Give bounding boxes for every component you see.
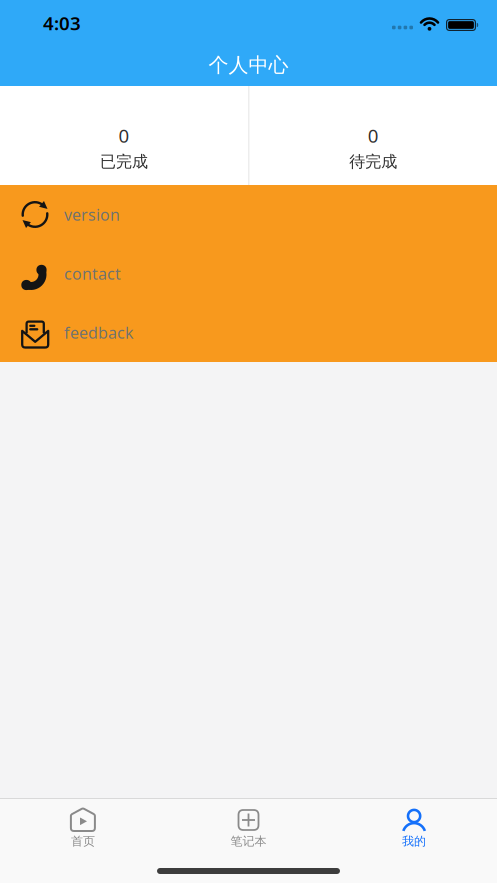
button[interactable]: contact [0,244,497,303]
staticText: 笔记本 [230,834,266,849]
staticText: 个人中心 [208,53,288,77]
button[interactable]: feedback [0,303,497,362]
staticText: 0 [368,123,379,148]
staticText: contact [64,263,121,284]
button[interactable]: 首页 [0,799,166,855]
staticText: 已完成 [100,152,148,171]
staticText: 4:03 [43,11,81,35]
staticText: 首页 [71,834,95,849]
button[interactable]: 我的 [331,799,497,855]
staticText: 0 [118,123,129,148]
button[interactable]: 笔记本 [166,799,331,855]
staticText: feedback [64,322,134,343]
staticText: 我的 [402,834,426,849]
button[interactable]: version [0,185,497,244]
staticText: version [64,204,120,225]
staticText: 待完成 [349,152,397,171]
